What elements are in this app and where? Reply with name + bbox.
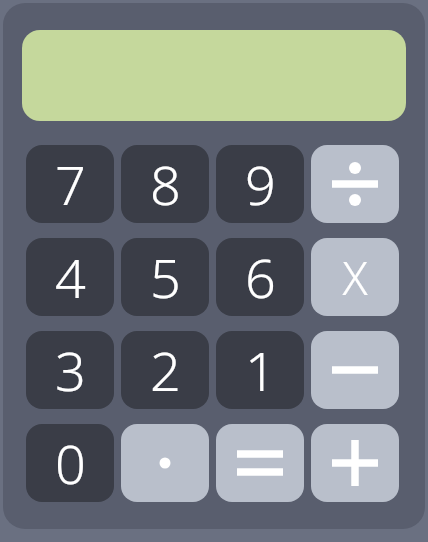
- staticText: 9: [245, 147, 276, 221]
- button[interactable]: 7: [26, 145, 114, 223]
- staticText: 7: [55, 147, 86, 221]
- button[interactable]: 6: [216, 238, 304, 316]
- button[interactable]: 8: [121, 145, 209, 223]
- button[interactable]: Divide: [311, 145, 399, 223]
- button[interactable]: Multiply: [311, 238, 399, 316]
- staticText: X: [342, 246, 368, 309]
- staticText: 3: [55, 333, 86, 407]
- button[interactable]: 1: [216, 331, 304, 409]
- button[interactable]: 5: [121, 238, 209, 316]
- button[interactable]: 4: [26, 238, 114, 316]
- button[interactable]: 2: [121, 331, 209, 409]
- button[interactable]: Decimal point: [121, 424, 209, 502]
- button[interactable]: Plus: [311, 424, 399, 502]
- staticText: 6: [245, 240, 276, 314]
- staticText: 8: [150, 147, 181, 221]
- button[interactable]: 3: [26, 331, 114, 409]
- staticText: 4: [55, 240, 86, 314]
- button[interactable]: 9: [216, 145, 304, 223]
- button[interactable]: Equals: [216, 424, 304, 502]
- staticText: 5: [150, 240, 181, 314]
- staticText: 1: [245, 333, 276, 407]
- button[interactable]: Minus: [311, 331, 399, 409]
- button[interactable]: 0: [26, 424, 114, 502]
- staticText: 2: [150, 333, 181, 407]
- staticText: 0: [55, 426, 86, 500]
